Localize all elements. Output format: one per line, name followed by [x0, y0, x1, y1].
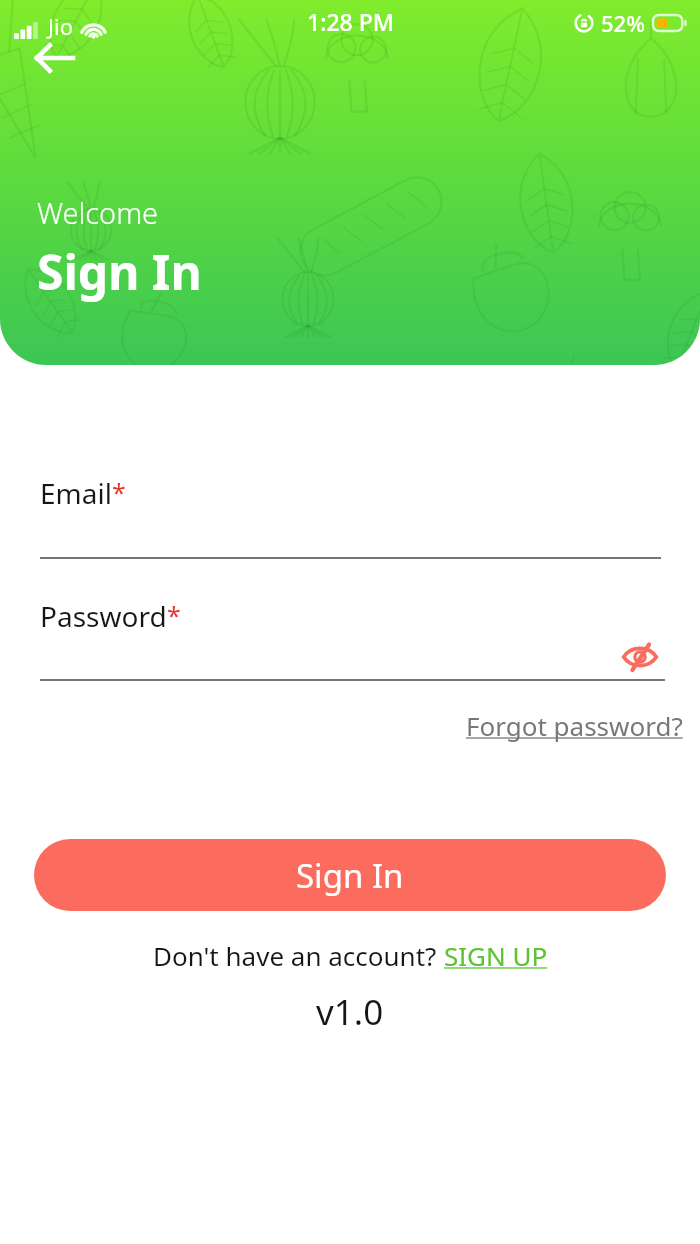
- staticText: v1.0: [316, 988, 384, 1036]
- staticText: Forgot password?: [466, 708, 683, 743]
- staticText: Sign In: [296, 853, 404, 898]
- staticText: Sign In: [37, 239, 202, 304]
- button[interactable]: Show password: [614, 637, 666, 677]
- button[interactable]: Forgot password?: [460, 705, 689, 746]
- staticText: Email: [40, 474, 112, 512]
- staticText: *: [167, 598, 181, 632]
- staticText: Jio: [48, 11, 73, 41]
- staticText: *: [112, 475, 126, 509]
- button[interactable]: Back: [26, 29, 84, 87]
- staticText: 52%: [601, 8, 645, 38]
- staticText: Welcome: [37, 193, 159, 232]
- staticText: Don't have an account?: [153, 938, 444, 973]
- button[interactable]: Sign In: [34, 839, 666, 911]
- staticText: SIGN UP: [444, 938, 548, 973]
- staticText: Password: [40, 597, 167, 635]
- button[interactable]: SIGN UP: [444, 938, 548, 973]
- staticText: 1:28 PM: [307, 6, 394, 37]
